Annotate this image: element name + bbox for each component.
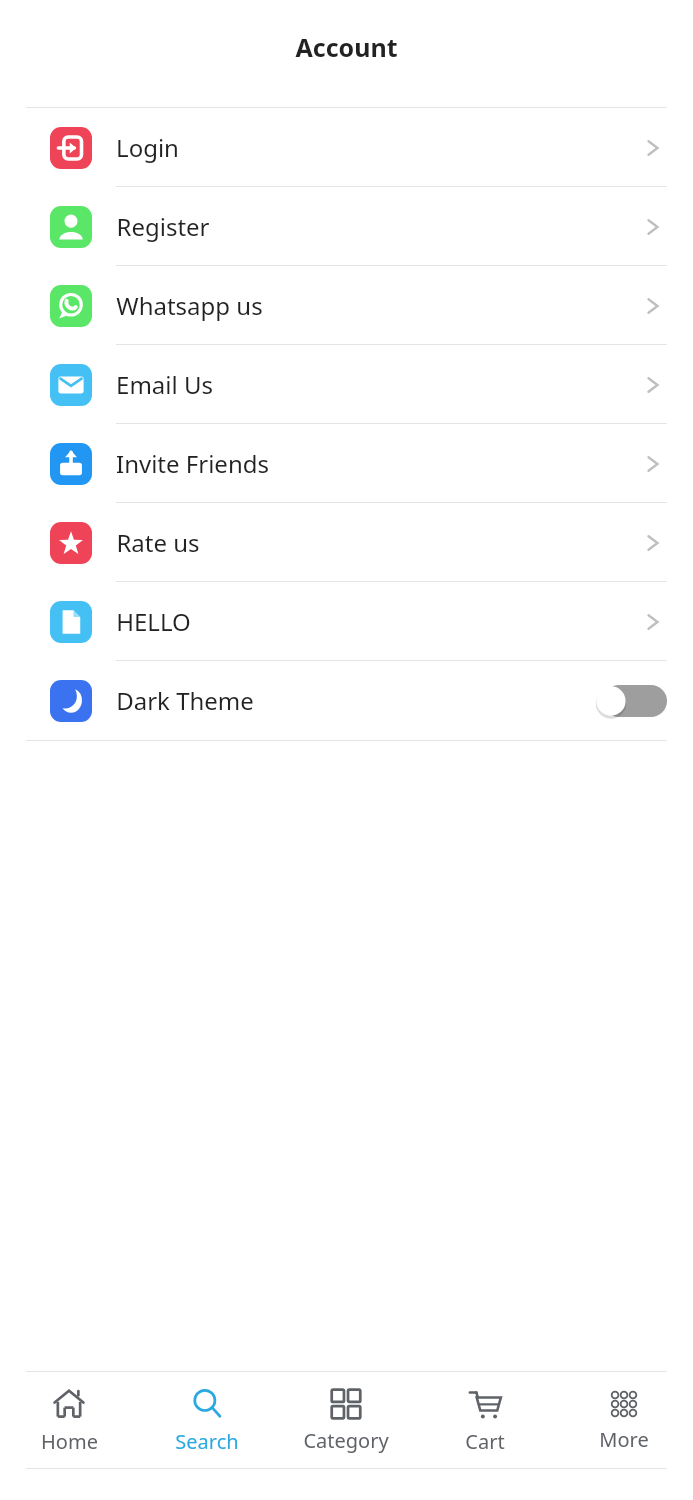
button[interactable]: Dark Theme (0, 661, 693, 740)
staticText: Rate us (116, 526, 200, 559)
button[interactable]: HELLO (0, 582, 693, 661)
staticText: Dark Theme (116, 684, 254, 717)
staticText: More (599, 1426, 649, 1453)
staticText: Cart (465, 1428, 505, 1455)
button[interactable]: Home (0, 1372, 138, 1468)
button[interactable]: Cart (415, 1372, 554, 1468)
staticText: HELLO (116, 605, 191, 638)
staticText: Invite Friends (116, 447, 269, 480)
staticText: Home (41, 1428, 98, 1455)
button[interactable]: More (554, 1372, 693, 1468)
button[interactable]: Search (138, 1372, 276, 1468)
staticText: Login (116, 131, 179, 164)
staticText: Search (175, 1428, 239, 1455)
button[interactable]: Invite Friends (0, 424, 693, 503)
button[interactable]: Register (0, 187, 693, 266)
staticText: Account (295, 30, 398, 64)
button[interactable]: Dark Theme toggle (589, 682, 667, 720)
button[interactable]: Email Us (0, 345, 693, 424)
staticText: Category (303, 1427, 389, 1454)
staticText: Register (116, 210, 210, 243)
button[interactable]: Login (0, 108, 693, 187)
button[interactable]: Category (276, 1372, 415, 1468)
staticText: Email Us (116, 368, 213, 401)
staticText: Whatsapp us (116, 289, 263, 322)
button[interactable]: Whatsapp us (0, 266, 693, 345)
button[interactable]: Rate us (0, 503, 693, 582)
